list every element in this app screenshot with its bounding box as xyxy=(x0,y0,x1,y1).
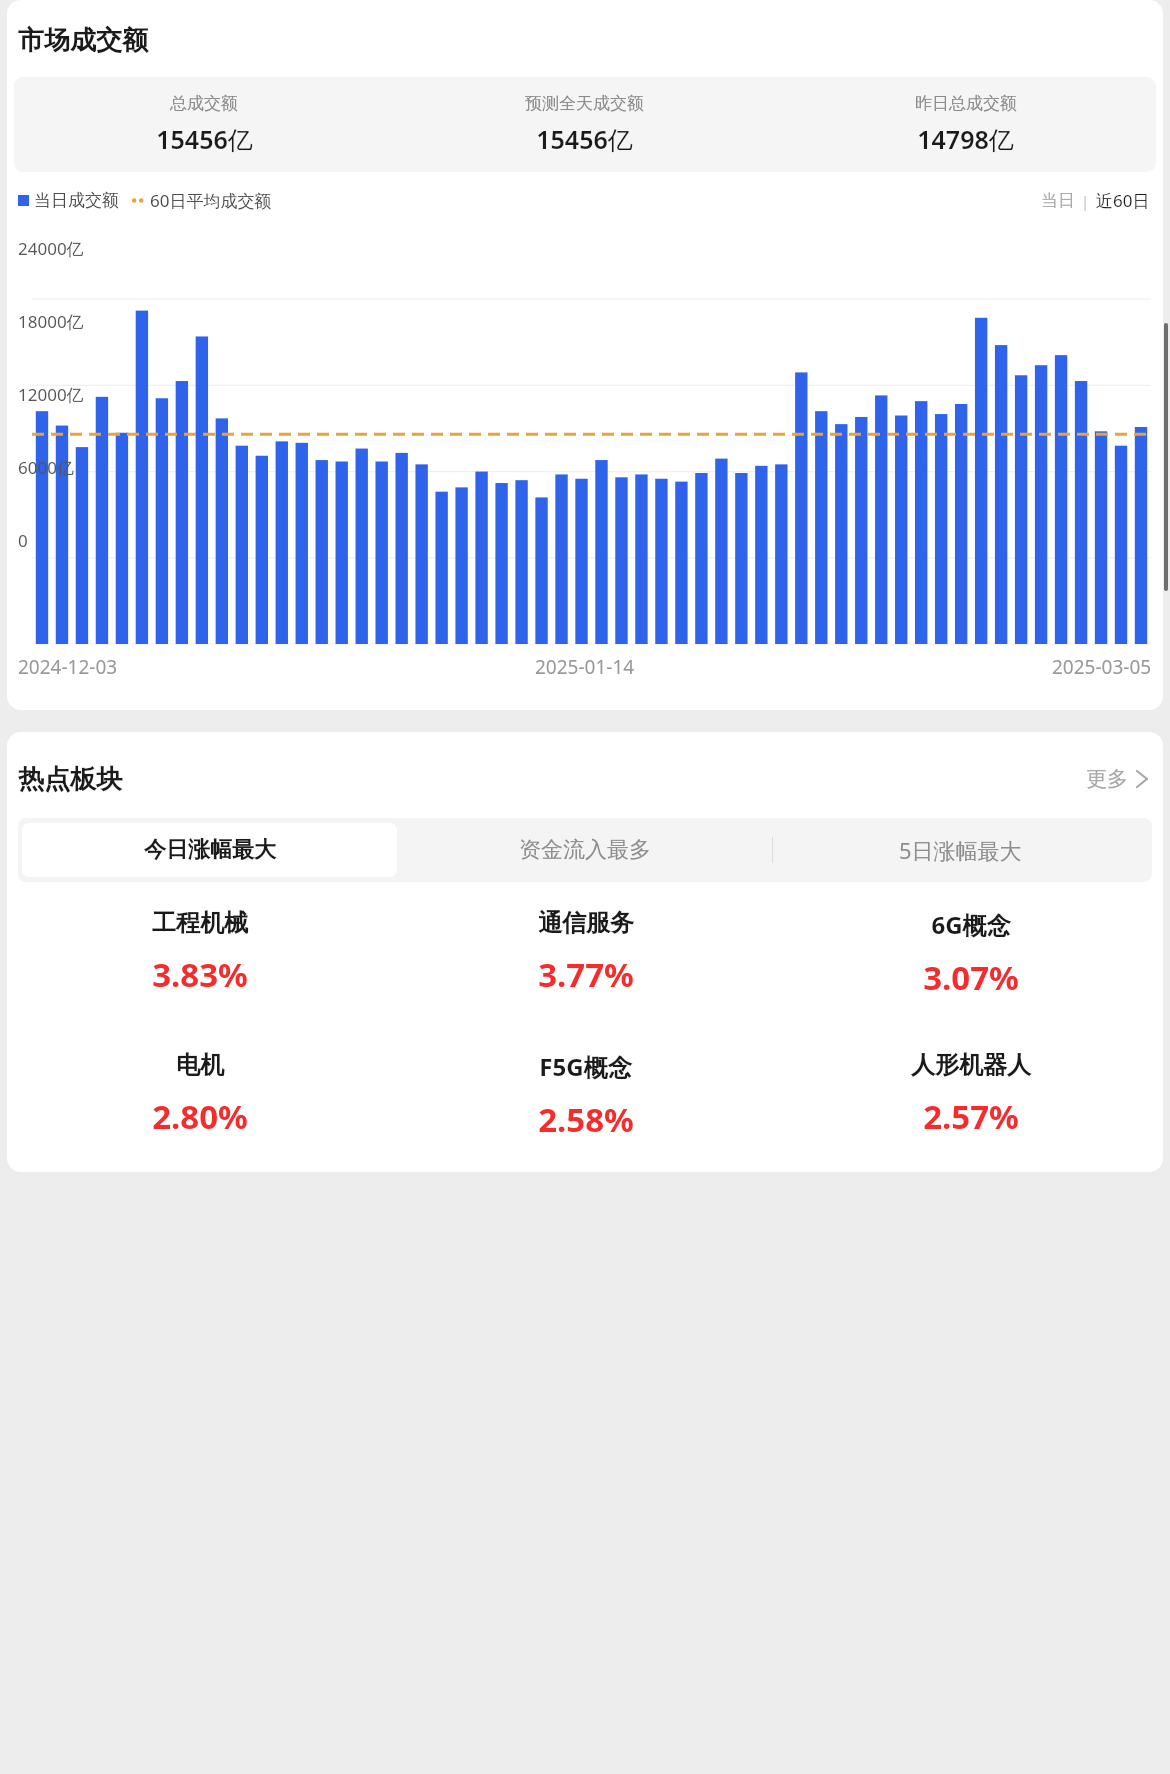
staticText: 预测全天成交额 xyxy=(525,93,644,114)
staticText: 3.77% xyxy=(538,952,634,997)
staticText: 资金流入最多 xyxy=(519,836,651,864)
staticText: 3.83% xyxy=(152,952,248,997)
staticText: 3.07% xyxy=(923,955,1019,1000)
staticText: 24000亿 xyxy=(18,237,84,260)
button[interactable]: 当日 xyxy=(1039,190,1077,211)
staticText: 今日涨幅最大 xyxy=(144,836,276,864)
staticText: 2025-01-14 xyxy=(535,654,635,680)
button[interactable]: 近60日 xyxy=(1094,189,1152,212)
button[interactable]: 6G概念 xyxy=(778,904,1163,1004)
staticText: 2.57% xyxy=(923,1094,1019,1139)
staticText: 12000亿 xyxy=(18,383,84,406)
button[interactable]: 5日涨幅最大 xyxy=(773,822,1148,878)
button[interactable]: 今日涨幅最大 xyxy=(22,823,397,877)
staticText: 更多 xyxy=(1086,766,1128,792)
button[interactable]: F5G概念 xyxy=(393,1046,778,1146)
staticText: 电机 xyxy=(176,1050,224,1080)
staticText: 工程机械 xyxy=(152,908,248,938)
staticText: 市场成交额 xyxy=(18,24,148,57)
button[interactable]: 更多 xyxy=(1082,762,1152,796)
staticText: 通信服务 xyxy=(538,908,634,938)
staticText: 60日平均成交额 xyxy=(150,189,272,212)
staticText: 14798亿 xyxy=(917,122,1014,156)
staticText: | xyxy=(1077,191,1094,211)
staticText: 昨日总成交额 xyxy=(915,93,1017,114)
staticText: 18000亿 xyxy=(18,310,84,333)
staticText: 近60日 xyxy=(1096,189,1150,212)
staticText: 2024-12-03 xyxy=(18,654,118,680)
staticText: 6000亿 xyxy=(18,456,74,479)
staticText: 2.58% xyxy=(538,1097,634,1142)
staticText: 0 xyxy=(18,529,28,552)
staticText: 人形机器人 xyxy=(911,1050,1031,1080)
button[interactable]: 通信服务 xyxy=(393,904,778,1001)
button[interactable]: 资金流入最多 xyxy=(397,823,772,877)
staticText: 6G概念 xyxy=(931,908,1011,941)
staticText: 当日 xyxy=(1041,190,1075,211)
button[interactable]: 电机 xyxy=(7,1046,393,1143)
staticText: 热点板块 xyxy=(18,763,122,796)
staticText: 总成交额 xyxy=(170,93,238,114)
button[interactable]: 人形机器人 xyxy=(778,1046,1163,1143)
staticText: F5G概念 xyxy=(539,1050,632,1083)
staticText: 当日成交额 xyxy=(34,190,119,211)
button[interactable]: 工程机械 xyxy=(7,904,393,1001)
staticText: 2025-03-05 xyxy=(1052,654,1152,680)
staticText: 2.80% xyxy=(152,1094,248,1139)
staticText: 5日涨幅最大 xyxy=(899,835,1022,865)
staticText: 15456亿 xyxy=(156,122,253,156)
staticText: 15456亿 xyxy=(536,122,633,156)
